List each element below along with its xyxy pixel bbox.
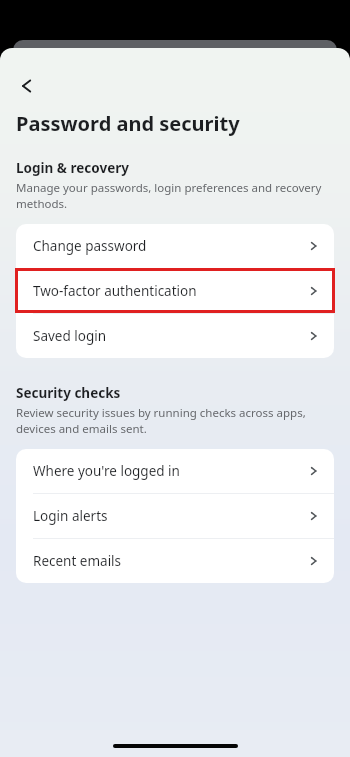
button[interactable]: Recent emails xyxy=(16,539,334,583)
staticText: Manage your passwords, login preferences… xyxy=(16,180,326,211)
staticText: Change password xyxy=(33,237,306,255)
button[interactable]: Saved login xyxy=(16,314,334,358)
button[interactable]: Change password xyxy=(16,224,334,268)
staticText: Saved login xyxy=(33,327,306,345)
staticText: Two-factor authentication xyxy=(33,282,306,300)
staticText: Password and security xyxy=(16,110,240,137)
staticText: Login & recovery xyxy=(16,159,129,177)
button[interactable]: Where you're logged in xyxy=(16,449,334,493)
button[interactable]: Two-factor authentication xyxy=(16,269,334,313)
staticText: Review security issues by running checks… xyxy=(16,405,326,436)
staticText: Recent emails xyxy=(33,552,306,570)
staticText: Security checks xyxy=(16,384,121,402)
staticText: Login alerts xyxy=(33,507,306,525)
button[interactable]: Back xyxy=(10,69,44,103)
staticText: Where you're logged in xyxy=(33,462,306,480)
button[interactable]: Login alerts xyxy=(16,494,334,538)
